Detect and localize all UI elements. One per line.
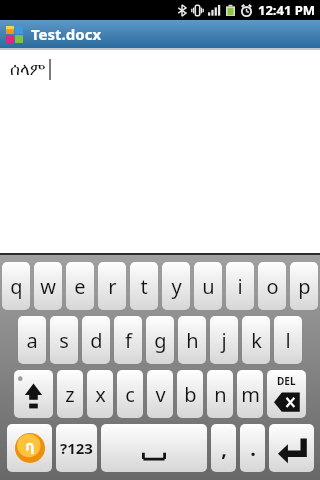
staticText: . <box>250 435 256 462</box>
staticText: a <box>26 327 38 354</box>
staticText: l <box>285 327 291 354</box>
button[interactable]: h <box>178 316 206 364</box>
button[interactable]: k <box>242 316 270 364</box>
staticText: d <box>90 327 103 354</box>
button[interactable]: f <box>114 316 142 364</box>
staticText: w <box>40 273 56 300</box>
button[interactable]: . <box>240 424 265 472</box>
staticText: c <box>125 381 135 408</box>
staticText: u <box>202 273 215 300</box>
staticText: m <box>241 381 260 408</box>
button[interactable]: z <box>57 370 83 418</box>
button[interactable]: a <box>18 316 46 364</box>
button[interactable]: g <box>146 316 174 364</box>
button[interactable]: b <box>177 370 203 418</box>
button[interactable]: u <box>194 262 222 310</box>
staticText: p <box>298 273 311 300</box>
button[interactable]: m <box>237 370 263 418</box>
staticText: k <box>251 327 262 354</box>
staticText: v <box>155 381 166 408</box>
button[interactable]: Change language <box>7 424 52 472</box>
staticText: ባ <box>25 438 35 458</box>
button[interactable]: q <box>2 262 30 310</box>
button[interactable]: e <box>66 262 94 310</box>
staticText: g <box>154 327 167 354</box>
button[interactable]: s <box>50 316 78 364</box>
staticText: i <box>237 273 243 300</box>
staticText: b <box>184 381 197 408</box>
button[interactable]: Test.docx <box>0 20 320 48</box>
button[interactable]: l <box>274 316 302 364</box>
button[interactable]: ?123 <box>56 424 97 472</box>
button[interactable]: Delete <box>267 370 306 418</box>
staticText: h <box>186 327 199 354</box>
staticText: t <box>140 273 148 300</box>
staticText: x <box>95 381 106 408</box>
staticText: , <box>221 435 227 462</box>
staticText: ሰላም <box>10 61 46 78</box>
button[interactable]: r <box>98 262 126 310</box>
staticText: 12:41 PM <box>258 1 316 19</box>
staticText: z <box>65 381 75 408</box>
staticText: o <box>266 273 279 300</box>
button[interactable]: ሰላም <box>0 50 320 253</box>
button[interactable]: t <box>130 262 158 310</box>
staticText: q <box>10 273 23 300</box>
button[interactable]: i <box>226 262 254 310</box>
staticText: Test.docx <box>31 24 102 44</box>
button[interactable]: x <box>87 370 113 418</box>
staticText: f <box>125 327 132 354</box>
button[interactable]: , <box>211 424 236 472</box>
button[interactable]: j <box>210 316 238 364</box>
button[interactable]: Space <box>101 424 207 472</box>
staticText: e <box>74 273 86 300</box>
button[interactable]: v <box>147 370 173 418</box>
button[interactable]: w <box>34 262 62 310</box>
staticText: n <box>214 381 227 408</box>
button[interactable]: n <box>207 370 233 418</box>
staticText: DEL <box>277 374 296 388</box>
button[interactable]: Shift <box>14 370 53 418</box>
staticText: y <box>171 273 182 300</box>
button[interactable]: d <box>82 316 110 364</box>
button[interactable]: o <box>258 262 286 310</box>
staticText: j <box>221 327 227 354</box>
staticText: s <box>59 327 69 354</box>
button[interactable]: Enter <box>269 424 314 472</box>
staticText: ?123 <box>60 438 93 458</box>
button[interactable]: p <box>290 262 318 310</box>
button[interactable]: c <box>117 370 143 418</box>
staticText: r <box>108 273 117 300</box>
button[interactable]: y <box>162 262 190 310</box>
